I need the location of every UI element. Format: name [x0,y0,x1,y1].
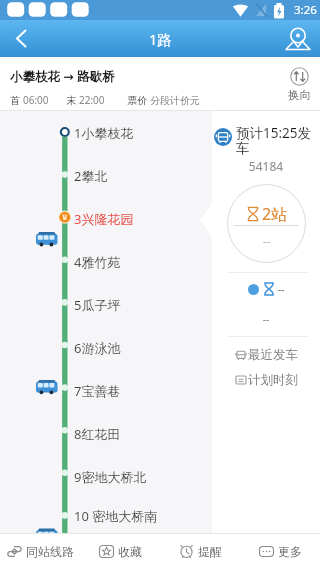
button[interactable]: 8红花田 [0,412,212,455]
button[interactable]: 最近发车 [236,344,298,366]
staticText: 换向 [288,88,311,102]
button[interactable]: 7宝善巷 [0,369,212,412]
staticText: 分段计价元 [150,94,200,107]
staticText: 1小攀枝花 [74,124,134,142]
button[interactable]: 换向 [288,67,311,102]
button[interactable]: Map [278,20,320,57]
staticText: 4雅竹苑 [74,253,121,271]
button[interactable]: Back [0,20,42,57]
staticText: 计划时刻 [248,372,298,388]
button[interactable]: 9密地大桥北 [0,455,212,498]
button[interactable]: 更多 [240,534,320,569]
button[interactable]: 1小攀枝花 [0,111,212,154]
staticText: 3兴隆花园 [74,210,134,228]
staticText: 54184 [212,158,320,174]
staticText: 末 [66,93,79,107]
staticText: 3:26 [294,2,317,18]
staticText: -- [263,233,271,248]
staticText: 同站线路 [26,544,74,559]
button[interactable]: 6游泳池 [0,326,212,369]
staticText: 提醒 [198,544,222,559]
staticText: 22:00 [79,93,105,107]
button[interactable]: 3兴隆花园 [0,197,212,240]
staticText: 票价 [127,93,150,107]
staticText: 最近发车 [248,347,298,363]
staticText: -- [212,312,320,326]
staticText: -- [278,282,285,296]
button[interactable]: 2攀北 [0,154,212,197]
button[interactable]: 同站线路 [0,534,80,569]
button[interactable]: 计划时刻 [236,369,298,391]
staticText: 小攀枝花 → 路歇桥 [10,68,115,85]
staticText: 收藏 [118,544,142,559]
staticText: 7宝善巷 [74,382,121,400]
button[interactable]: 10 密地大桥南 [0,498,212,533]
button[interactable]: 收藏 [80,534,160,569]
button[interactable]: 提醒 [160,534,240,569]
staticText: 06:00 [23,93,49,107]
staticText: 9密地大桥北 [74,468,147,486]
staticText: 2攀北 [74,167,108,185]
button[interactable]: 5瓜子坪 [0,283,212,326]
staticText: 2站 [262,203,288,225]
staticText: 8红花田 [74,425,121,443]
staticText: 1路 [149,29,172,49]
staticText: 10 密地大桥南 [74,507,158,525]
staticText: 更多 [278,544,302,559]
staticText: 首 [10,93,23,107]
staticText: 6游泳池 [74,339,121,357]
staticText: 5瓜子坪 [74,296,121,314]
button[interactable]: 4雅竹苑 [0,240,212,283]
staticText: 预计15:25发车 [236,124,318,157]
